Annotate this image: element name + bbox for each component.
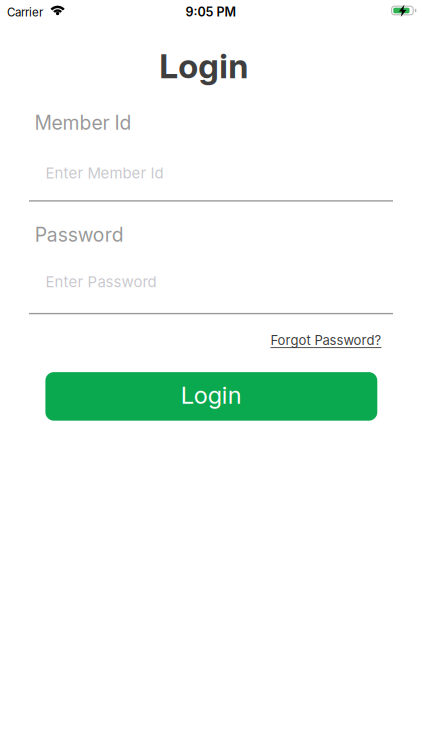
staticText: Carrier [7,5,43,19]
staticText: Member Id [35,111,132,134]
staticText: Forgot Password? [270,332,381,348]
button[interactable]: Enter Member Id [29,154,393,201]
button[interactable]: Enter Password [29,267,393,314]
staticText: 9:05 PM [185,4,236,20]
staticText: Enter Member Id [45,164,163,182]
staticText: Enter Password [45,273,156,291]
button[interactable]: Forgot Password? [270,332,381,348]
button[interactable]: Login [45,372,377,421]
staticText: Login [159,46,248,86]
staticText: Password [35,223,124,246]
staticText: Login [181,381,242,409]
